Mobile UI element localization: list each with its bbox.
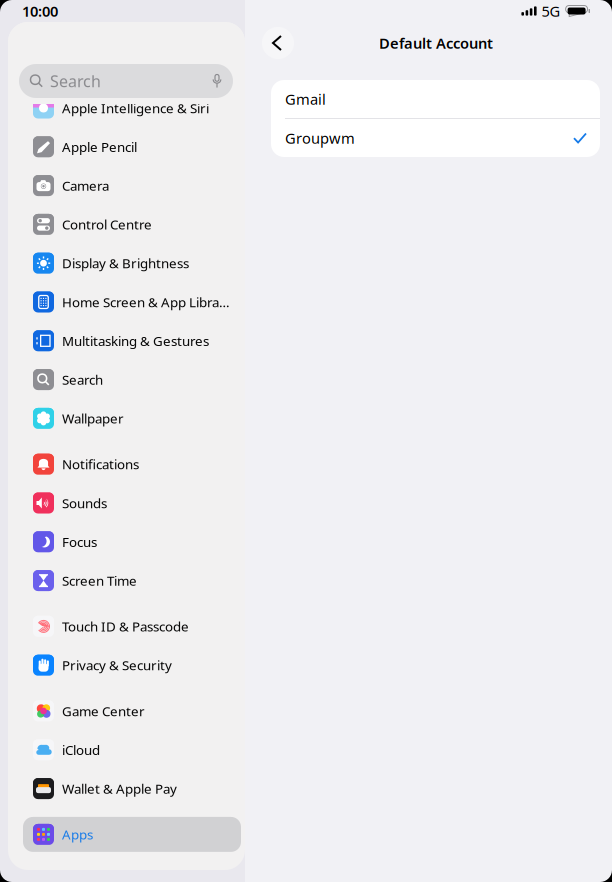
button[interactable]: Apps bbox=[12, 815, 241, 854]
button[interactable]: Gmail bbox=[271, 80, 600, 118]
button[interactable]: Wallet & Apple Pay bbox=[12, 769, 241, 808]
button[interactable]: Notifications bbox=[12, 445, 241, 484]
button[interactable]: Camera bbox=[12, 166, 241, 205]
button[interactable]: Screen Time bbox=[12, 561, 241, 600]
staticText: Game Center bbox=[62, 702, 145, 720]
staticText: iCloud bbox=[62, 741, 100, 759]
staticText: Notifications bbox=[62, 455, 139, 473]
button[interactable]: Control Centre bbox=[12, 205, 241, 244]
staticText: Groupwm bbox=[285, 128, 355, 148]
staticText: 10:00 bbox=[22, 1, 58, 21]
staticText: Apple Intelligence & Siri bbox=[62, 99, 209, 117]
button[interactable]: Search bbox=[12, 360, 241, 399]
button[interactable]: Apple Pencil bbox=[12, 127, 241, 166]
button[interactable]: iCloud bbox=[12, 730, 241, 769]
button[interactable]: Privacy & Security bbox=[12, 646, 241, 685]
button[interactable]: Touch ID & Passcode bbox=[12, 607, 241, 646]
button[interactable]: Apple Intelligence & Siri bbox=[12, 89, 241, 127]
staticText: Privacy & Security bbox=[62, 656, 172, 674]
staticText: Sounds bbox=[62, 494, 107, 512]
button[interactable]: Back bbox=[262, 27, 294, 59]
staticText: Search bbox=[62, 371, 103, 388]
staticText: Screen Time bbox=[62, 572, 137, 589]
staticText: Wallpaper bbox=[62, 409, 124, 427]
button[interactable]: Multitasking & Gestures bbox=[12, 321, 241, 360]
staticText: Apps bbox=[62, 825, 93, 843]
button[interactable]: Focus bbox=[12, 522, 241, 561]
staticText: Control Centre bbox=[62, 215, 152, 233]
staticText: Multitasking & Gestures bbox=[62, 332, 209, 350]
button[interactable]: Wallpaper bbox=[12, 399, 241, 438]
staticText: Default Account bbox=[379, 33, 493, 53]
button[interactable]: Sounds bbox=[12, 484, 241, 522]
button[interactable]: Game Center bbox=[12, 692, 241, 730]
staticText: Camera bbox=[62, 177, 109, 194]
staticText: Display & Brightness bbox=[62, 254, 189, 272]
staticText: Gmail bbox=[285, 89, 326, 109]
button[interactable]: Search bbox=[8, 22, 233, 98]
staticText: 5G bbox=[542, 1, 561, 21]
staticText: Focus bbox=[62, 533, 97, 551]
staticText: Home Screen & App Library bbox=[62, 293, 231, 311]
button[interactable]: Groupwm bbox=[271, 119, 600, 157]
button[interactable]: Home Screen & App Library bbox=[12, 283, 241, 321]
staticText: Apple Pencil bbox=[62, 138, 137, 156]
button[interactable]: Display & Brightness bbox=[12, 244, 241, 283]
staticText: Search bbox=[50, 70, 101, 92]
staticText: Wallet & Apple Pay bbox=[62, 780, 177, 797]
staticText: Touch ID & Passcode bbox=[62, 617, 189, 635]
